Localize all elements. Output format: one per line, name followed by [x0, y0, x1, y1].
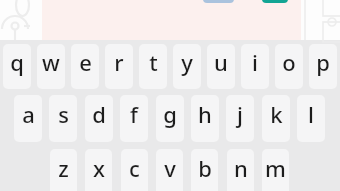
button[interactable]: b: [191, 149, 218, 191]
staticText: v: [164, 153, 176, 183]
staticText: d: [92, 99, 106, 129]
staticText: s: [58, 99, 69, 129]
button[interactable]: r: [105, 44, 133, 89]
button[interactable]: q: [3, 44, 31, 89]
button[interactable]: k: [262, 95, 290, 142]
button[interactable]: h: [191, 95, 219, 142]
button[interactable]: d: [85, 95, 113, 142]
staticText: p: [316, 47, 330, 77]
staticText: e: [79, 47, 92, 77]
button[interactable]: c: [121, 149, 148, 191]
button[interactable]: j: [226, 95, 254, 142]
staticText: c: [129, 153, 140, 183]
staticText: m: [265, 153, 286, 183]
button[interactable]: g: [156, 95, 184, 142]
button[interactable]: l: [297, 95, 325, 142]
staticText: k: [270, 99, 283, 129]
staticText: h: [198, 99, 212, 129]
staticText: j: [237, 99, 243, 129]
staticText: f: [130, 99, 138, 129]
button[interactable]: Contact: [301, 0, 340, 40]
button[interactable]: s: [49, 95, 77, 142]
button[interactable]: f: [120, 95, 148, 142]
staticText: u: [214, 47, 228, 77]
staticText: l: [308, 99, 314, 129]
button[interactable]: e: [71, 44, 99, 89]
staticText: o: [282, 47, 296, 77]
staticText: n: [234, 153, 248, 183]
staticText: b: [198, 153, 212, 183]
button[interactable]: a: [14, 95, 42, 142]
button[interactable]: y: [173, 44, 201, 89]
button[interactable]: t: [139, 44, 167, 89]
staticText: x: [93, 153, 105, 183]
button[interactable]: v: [156, 149, 183, 191]
staticText: a: [22, 99, 35, 129]
button[interactable]: Send: [262, 0, 288, 3]
staticText: g: [163, 99, 177, 129]
staticText: w: [42, 47, 60, 77]
staticText: y: [181, 47, 193, 77]
staticText: r: [114, 47, 124, 77]
button[interactable]: w: [37, 44, 65, 89]
button[interactable]: o: [275, 44, 303, 89]
button[interactable]: u: [207, 44, 235, 89]
staticText: z: [58, 153, 69, 183]
button[interactable]: m: [262, 149, 289, 191]
button[interactable]: x: [85, 149, 112, 191]
staticText: t: [149, 47, 158, 77]
button[interactable]: Suggestion chip: [203, 0, 234, 3]
staticText: q: [10, 47, 24, 77]
button[interactable]: z: [50, 149, 77, 191]
button[interactable]: Contact thumbnail: [0, 0, 42, 40]
button[interactable]: i: [241, 44, 269, 89]
staticText: i: [252, 47, 258, 77]
button[interactable]: p: [309, 44, 337, 89]
button[interactable]: n: [227, 149, 254, 191]
